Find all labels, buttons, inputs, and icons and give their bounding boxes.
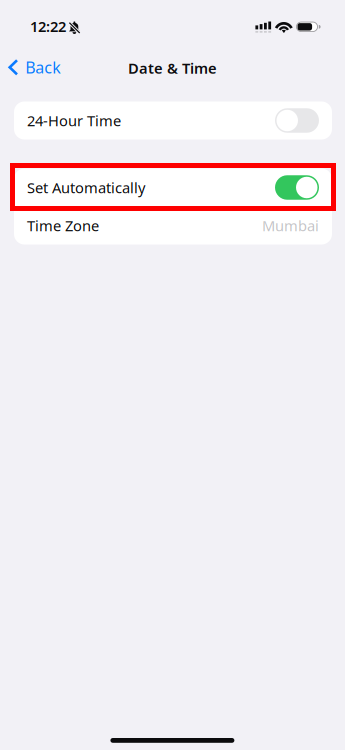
staticText: Time Zone — [27, 216, 99, 235]
button[interactable]: Back — [8, 51, 68, 84]
staticText: Date & Time — [128, 58, 217, 78]
staticText: Set Automatically — [27, 178, 145, 197]
button[interactable]: Set Automatically — [14, 168, 332, 206]
staticText: 12:22 — [30, 16, 66, 36]
staticText: Back — [25, 57, 61, 78]
button[interactable]: 24-Hour Time — [14, 101, 332, 139]
staticText: 24-Hour Time — [27, 111, 121, 130]
button[interactable]: Time Zone — [14, 206, 332, 244]
staticText: Mumbai — [262, 216, 319, 235]
